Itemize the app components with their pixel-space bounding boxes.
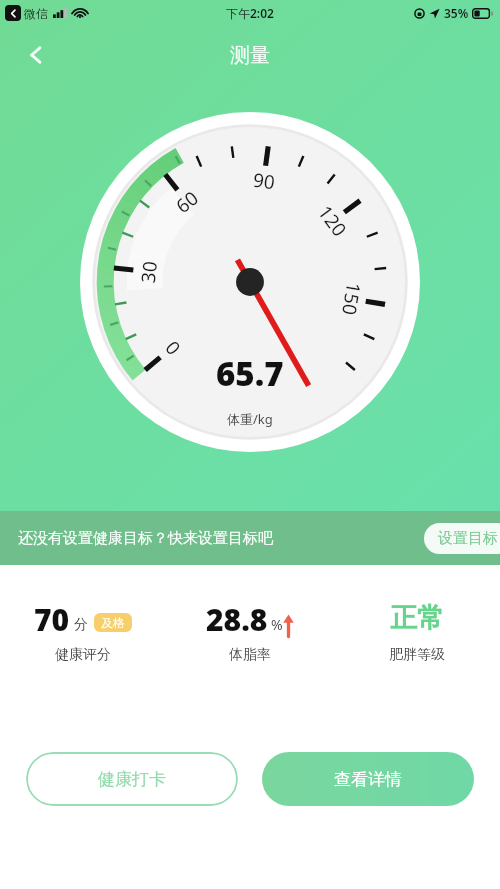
staticText: 及格: [101, 615, 125, 630]
staticText: 0: [159, 335, 186, 360]
staticText: 60: [170, 185, 204, 219]
staticText: 微信: [24, 6, 48, 21]
staticText: 测量: [230, 43, 270, 68]
staticText: 分: [74, 616, 88, 634]
staticText: %: [271, 615, 283, 634]
staticText: 35%: [444, 5, 469, 21]
staticText: 150: [336, 281, 367, 317]
button[interactable]: Back: [14, 33, 58, 77]
button[interactable]: Back to WeChat: [5, 5, 21, 21]
staticText: 查看详情: [334, 769, 402, 790]
staticText: 70: [34, 599, 70, 637]
staticText: 30: [135, 260, 163, 284]
staticText: 肥胖等级: [389, 646, 445, 664]
button[interactable]: 设置目标: [424, 523, 500, 554]
staticText: 健康评分: [55, 646, 111, 664]
staticText: 28.8: [206, 599, 268, 637]
staticText: 下午2:02: [226, 5, 274, 21]
staticText: 65.7: [216, 351, 284, 396]
button[interactable]: 健康打卡: [26, 752, 238, 806]
staticText: 设置目标: [438, 529, 498, 548]
staticText: 体脂率: [229, 646, 271, 664]
staticText: 120: [312, 200, 353, 242]
staticText: 正常: [390, 601, 444, 635]
staticText: 90: [251, 167, 277, 195]
staticText: 体重/kg: [227, 410, 273, 428]
button[interactable]: 查看详情: [262, 752, 474, 806]
staticText: 健康打卡: [98, 769, 166, 790]
staticText: 还没有设置健康目标？快来设置目标吧: [18, 529, 273, 548]
